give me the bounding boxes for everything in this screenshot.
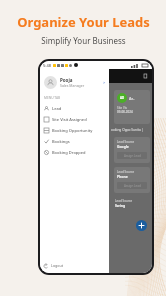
staticText: Assign Lead [124, 154, 141, 158]
staticText: Google [117, 144, 129, 149]
button[interactable]: Bookings [44, 136, 106, 147]
staticText: Lead Source [117, 140, 135, 144]
staticText: Assign Lead [124, 184, 141, 188]
button[interactable]: Add lead [136, 220, 147, 231]
staticText: Ar.. [129, 96, 135, 101]
staticText: MENU TAB [44, 96, 61, 100]
staticText: Lead [52, 106, 62, 111]
staticText: Booking Opportunity [52, 128, 93, 133]
button[interactable]: Logout [44, 260, 106, 271]
staticText: Bookings [52, 139, 70, 144]
button[interactable]: Lead Source [114, 167, 150, 193]
button[interactable]: Booking Dropped [44, 147, 106, 158]
staticText: ooking Oppo Sunita | [111, 128, 144, 132]
staticText: Lead Source [117, 170, 135, 174]
button[interactable]: AD [114, 90, 150, 124]
staticText: 09-08-2024 [117, 110, 133, 114]
button[interactable]: Assign Lead [117, 182, 147, 189]
button[interactable]: Pooja [44, 74, 106, 91]
staticText: Organize Your Leads [17, 13, 150, 31]
staticText: Pooja [60, 77, 73, 83]
button[interactable]: Assign Lead [117, 152, 147, 159]
staticText: Logout [51, 263, 63, 268]
button[interactable]: Site Visit Assigned [44, 114, 106, 125]
staticText: AD [120, 96, 125, 100]
staticText: Sales Manager [60, 83, 85, 88]
staticText: Booking Dropped [52, 150, 86, 155]
staticText: 5:48 [43, 63, 51, 68]
staticText: Lead Source [115, 199, 133, 203]
button[interactable]: Lead [44, 103, 106, 114]
staticText: Site Visit Assigned [52, 117, 87, 122]
staticText: > [103, 80, 106, 85]
staticText: Simplify Your Business [41, 35, 126, 46]
button[interactable]: Lead Source [114, 137, 150, 163]
staticText: Site Vis [117, 106, 127, 110]
button[interactable]: Notifications [143, 73, 149, 79]
staticText: Phone [117, 174, 128, 179]
staticText: Swing [115, 203, 126, 208]
button[interactable]: Booking Opportunity [44, 125, 106, 136]
